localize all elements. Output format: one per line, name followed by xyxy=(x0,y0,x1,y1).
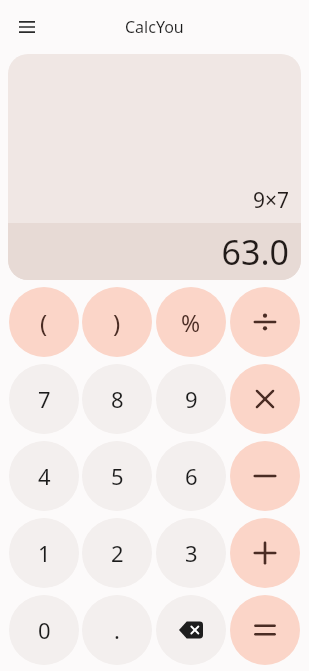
button[interactable]: 2 xyxy=(82,518,152,588)
staticText: 1 xyxy=(38,538,51,568)
button[interactable]: ) xyxy=(82,287,152,357)
staticText: 6 xyxy=(185,461,198,491)
button[interactable]: 9×7 xyxy=(8,54,301,280)
button[interactable]: % xyxy=(156,287,226,357)
button[interactable]: 5 xyxy=(82,441,152,511)
staticText: 7 xyxy=(38,384,51,414)
button[interactable]: 8 xyxy=(82,364,152,434)
button[interactable]: 6 xyxy=(156,441,226,511)
button[interactable]: Divide xyxy=(230,287,300,357)
staticText: CalcYou xyxy=(125,16,184,38)
staticText: % xyxy=(181,307,201,338)
button[interactable]: 3 xyxy=(156,518,226,588)
button[interactable]: Minus xyxy=(230,441,300,511)
staticText: 5 xyxy=(111,461,124,491)
staticText: 2 xyxy=(111,538,124,568)
button[interactable]: Menu xyxy=(8,8,46,46)
button[interactable]: Multiply xyxy=(230,364,300,434)
staticText: 9×7 xyxy=(252,186,289,215)
staticText: 9 xyxy=(185,384,198,414)
staticText: 63.0 xyxy=(221,229,289,275)
button[interactable]: Equals xyxy=(230,595,300,665)
button[interactable]: . xyxy=(82,595,152,665)
button[interactable]: 7 xyxy=(9,364,79,434)
button[interactable]: Plus xyxy=(230,518,300,588)
button[interactable]: 4 xyxy=(9,441,79,511)
staticText: 4 xyxy=(38,461,51,491)
staticText: ( xyxy=(40,306,48,339)
staticText: 8 xyxy=(111,384,124,414)
button[interactable]: 9 xyxy=(156,364,226,434)
staticText: ) xyxy=(113,306,121,339)
button[interactable]: 1 xyxy=(9,518,79,588)
staticText: 0 xyxy=(38,615,51,645)
button[interactable]: 0 xyxy=(9,595,79,665)
button[interactable]: Backspace xyxy=(156,595,226,665)
staticText: 3 xyxy=(185,538,198,568)
button[interactable]: ( xyxy=(9,287,79,357)
staticText: . xyxy=(114,615,120,645)
